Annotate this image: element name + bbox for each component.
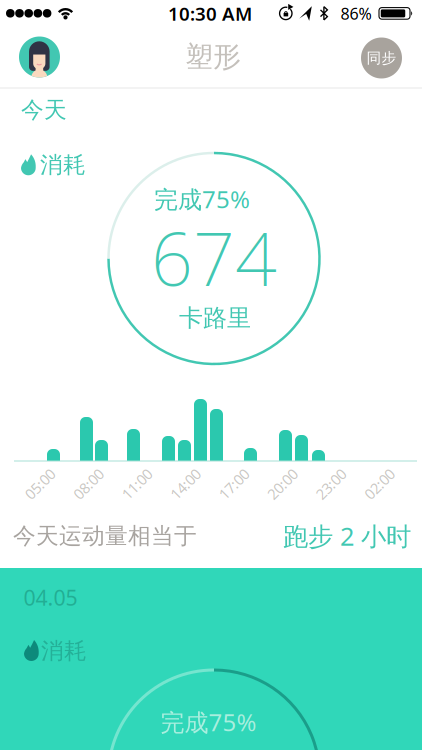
staticText: 11:00 [119,474,155,494]
staticText: 10:30 AM [168,1,252,26]
staticText: 卡路里 [179,303,251,333]
staticText: 完成75% [154,183,250,215]
staticText: 02:00 [361,474,397,494]
staticText: 04.05 [23,583,77,612]
staticText: 消耗 [40,151,86,179]
staticText: 14:00 [167,474,203,494]
staticText: 86% [340,3,371,24]
staticText: 今天 [21,96,67,124]
staticText: 完成75% [160,706,256,738]
staticText: 08:00 [70,474,106,494]
staticText: 同步 [366,49,396,67]
staticText: 05:00 [22,474,58,494]
staticText: 20:00 [264,474,300,494]
staticText: 消耗 [41,637,87,665]
staticText: 今天运动量相当于 [13,522,197,550]
staticText: 17:00 [216,474,252,494]
staticText: 塑形 [185,40,241,74]
staticText: 23:00 [313,474,349,494]
staticText: 跑步 2 小时 [283,519,411,553]
staticText: 674 [151,209,277,306]
